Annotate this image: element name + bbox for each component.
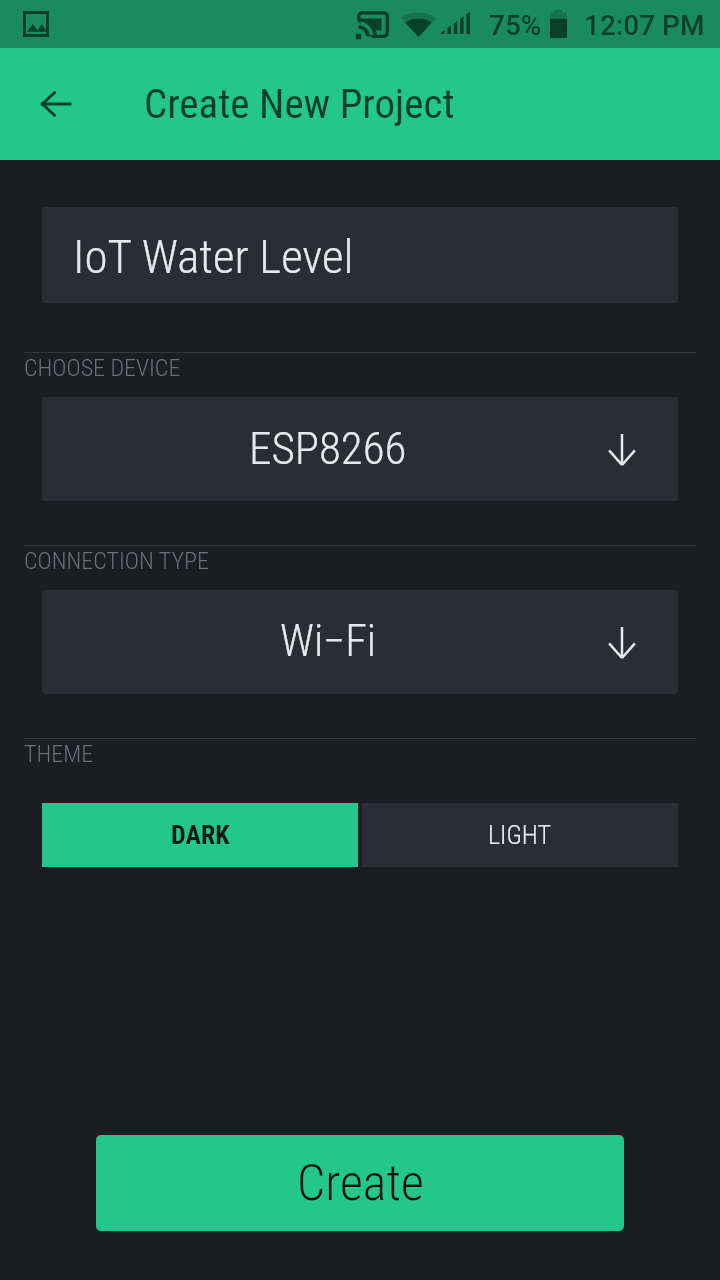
button[interactable]: DARK [42, 803, 358, 867]
staticText: DARK [171, 820, 230, 850]
button[interactable]: IoT Water Level [42, 207, 678, 303]
staticText: Create [297, 1154, 424, 1213]
button[interactable]: Wi−Fi [42, 590, 678, 694]
staticText: Wi−Fi [280, 615, 377, 667]
staticText: IoT Water Level [73, 229, 354, 284]
staticText: ESP8266 [249, 422, 407, 475]
staticText: 75% [489, 9, 542, 42]
staticText: 12:07 PM [584, 9, 705, 42]
other: Open dropdown [608, 627, 636, 658]
staticText: LIGHT [488, 820, 552, 850]
staticText: CHOOSE DEVICE [24, 354, 181, 382]
other: Open dropdown [608, 434, 636, 465]
staticText: Create New Project [144, 80, 455, 128]
button[interactable]: LIGHT [362, 803, 678, 867]
button[interactable]: Back [20, 48, 92, 160]
staticText: THEME [24, 740, 94, 768]
button[interactable]: Create [96, 1135, 624, 1231]
staticText: CONNECTION TYPE [24, 547, 209, 575]
button[interactable]: ESP8266 [42, 397, 678, 501]
